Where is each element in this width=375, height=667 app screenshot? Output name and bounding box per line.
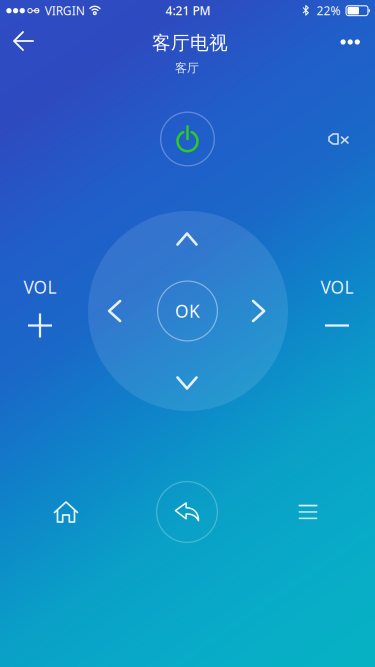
staticText: 客厅电视	[152, 31, 228, 54]
button[interactable]: Right	[231, 279, 287, 343]
staticText: VOL	[320, 275, 353, 298]
button[interactable]: Power	[152, 104, 222, 174]
button[interactable]: Down	[155, 355, 219, 411]
staticText: OK	[175, 299, 200, 322]
button[interactable]: Back	[152, 477, 222, 547]
button[interactable]: Left	[87, 279, 143, 343]
button[interactable]: VOL	[302, 267, 372, 347]
button[interactable]: Menu	[279, 483, 337, 541]
staticText: 4:21 PM	[165, 2, 210, 18]
button[interactable]: Mute	[312, 112, 366, 166]
button[interactable]: VOL	[5, 267, 75, 347]
staticText: VOL	[23, 275, 56, 298]
button[interactable]: More options	[327, 19, 373, 65]
staticText: 客厅	[175, 61, 199, 75]
button[interactable]: Up	[155, 211, 219, 267]
button[interactable]: Back	[1, 19, 47, 65]
button[interactable]: Home	[37, 483, 95, 541]
staticText: VIRGIN	[45, 3, 85, 19]
button[interactable]: OK	[157, 280, 218, 341]
staticText: 22%	[316, 3, 340, 19]
